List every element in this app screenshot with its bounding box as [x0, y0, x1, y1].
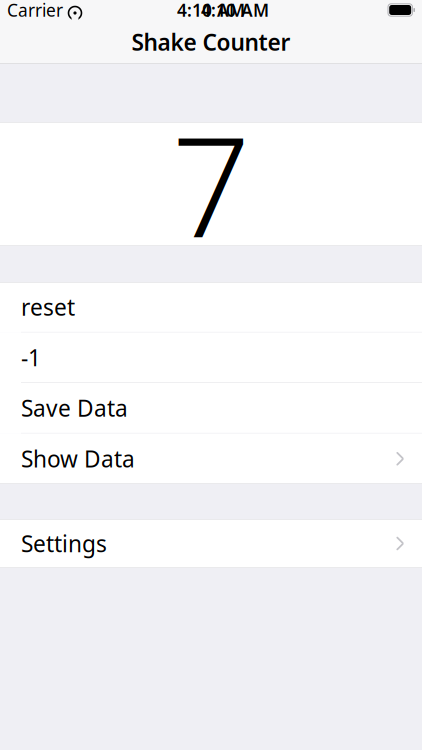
- staticText: 4:10 AM: [201, 0, 269, 21]
- staticText: Shake Counter: [131, 27, 290, 57]
- staticText: 4:10 AM: [177, 0, 245, 21]
- staticText: Save Data: [21, 393, 128, 423]
- staticText: 7: [171, 92, 250, 276]
- button[interactable]: reset: [0, 282, 422, 332]
- button[interactable]: Show Data: [0, 433, 422, 484]
- staticText: Show Data: [21, 444, 135, 474]
- button[interactable]: Settings: [0, 519, 422, 568]
- staticText: Carrier: [7, 0, 63, 21]
- staticText: reset: [21, 292, 75, 322]
- button[interactable]: -1: [0, 332, 422, 383]
- staticText: Settings: [21, 528, 107, 558]
- staticText: -1: [21, 342, 41, 372]
- button[interactable]: Save Data: [0, 383, 422, 433]
